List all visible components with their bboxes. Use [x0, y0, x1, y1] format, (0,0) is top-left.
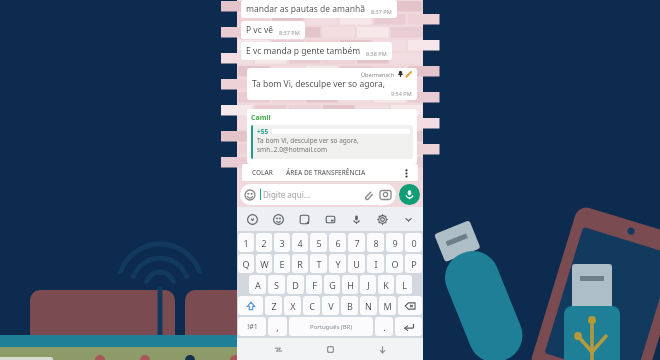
button[interactable]: O	[386, 254, 403, 273]
button[interactable]: B	[341, 296, 358, 315]
staticText: U	[353, 258, 360, 270]
button[interactable]: 7	[348, 233, 365, 252]
staticText: 6	[335, 237, 341, 249]
button[interactable]: Camil	[247, 109, 417, 164]
button[interactable]: Back	[371, 338, 393, 360]
button[interactable]: 4	[292, 233, 308, 252]
staticText: E vc manda p gente também	[246, 45, 361, 57]
button[interactable]: D	[287, 275, 304, 294]
button[interactable]: !#1	[238, 317, 266, 336]
button[interactable]: Enter	[395, 317, 422, 336]
button[interactable]: S	[268, 275, 285, 294]
button[interactable]: Stickers	[293, 208, 315, 230]
button[interactable]: .	[375, 317, 393, 336]
staticText: O	[391, 258, 399, 270]
button[interactable]: R	[292, 254, 308, 273]
button[interactable]: 5	[310, 233, 327, 252]
staticText: T	[316, 258, 322, 270]
button[interactable]: U	[348, 254, 365, 273]
button[interactable]: J	[360, 275, 376, 294]
staticText: W	[260, 258, 269, 270]
button[interactable]: K	[378, 275, 394, 294]
staticText: P	[411, 258, 417, 270]
button[interactable]: Y	[329, 254, 346, 273]
staticText: X	[290, 300, 296, 312]
staticText: Ta bom Vi, desculpe ver so agora,	[257, 136, 359, 145]
button[interactable]: 8	[367, 233, 384, 252]
button[interactable]: Voice typing	[241, 208, 263, 230]
button[interactable]: GIF	[319, 208, 341, 230]
staticText: 8	[373, 237, 379, 249]
button[interactable]: 0	[405, 233, 422, 252]
button[interactable]: Backspace	[398, 296, 422, 315]
staticText: F	[312, 279, 317, 291]
staticText: G	[329, 279, 336, 291]
button[interactable]: Emoji	[240, 184, 396, 205]
button[interactable]: Shift	[238, 296, 263, 315]
button[interactable]: Voice message	[399, 184, 420, 205]
button[interactable]: L	[396, 275, 412, 294]
staticText: M	[383, 300, 392, 312]
button[interactable]: X	[284, 296, 301, 315]
staticText: P vc vê	[246, 24, 274, 36]
button[interactable]: ,	[268, 317, 287, 336]
staticText: ,	[276, 321, 279, 333]
button[interactable]: 1	[238, 233, 254, 252]
staticText: 8:38 PM	[366, 50, 387, 57]
button[interactable]: Q	[238, 254, 254, 273]
button[interactable]: N	[360, 296, 377, 315]
staticText: J	[367, 279, 370, 291]
button[interactable]: Übermensch	[247, 68, 417, 100]
button[interactable]: COLAR	[250, 165, 275, 180]
staticText: 1	[243, 237, 249, 249]
staticText: smh..2.0@hotmail.com	[257, 145, 327, 154]
staticText: N	[365, 300, 372, 312]
staticText: COLAR	[252, 168, 273, 177]
button[interactable]: Emoji	[267, 208, 289, 230]
staticText: A	[255, 279, 261, 291]
button[interactable]: I	[367, 254, 384, 273]
button[interactable]: 3	[274, 233, 290, 252]
staticText: Ta bom Vi, desculpe ver so agora,	[252, 78, 385, 90]
button[interactable]: W	[256, 254, 272, 273]
button[interactable]: G	[324, 275, 340, 294]
staticText: L	[402, 279, 407, 291]
staticText: 4	[297, 237, 303, 249]
button[interactable]: A	[249, 275, 266, 294]
button[interactable]: 9	[386, 233, 403, 252]
button[interactable]: Português (BR)	[289, 317, 373, 336]
button[interactable]: Recents	[267, 338, 289, 360]
button[interactable]: P vc vê	[241, 21, 305, 39]
staticText: Q	[242, 258, 250, 270]
staticText: +55	[257, 127, 269, 136]
button[interactable]: Z	[265, 296, 282, 315]
button[interactable]: Collapse keyboard	[397, 208, 419, 230]
button[interactable]: E	[274, 254, 290, 273]
button[interactable]: 6	[329, 233, 346, 252]
button[interactable]: M	[379, 296, 396, 315]
button[interactable]: T	[310, 254, 327, 273]
staticText: Português (BR)	[310, 323, 353, 331]
staticText: Camil	[251, 113, 271, 123]
staticText: 2	[261, 237, 267, 249]
button[interactable]: 2	[256, 233, 272, 252]
button[interactable]: More options	[398, 165, 414, 181]
button[interactable]: P	[405, 254, 422, 273]
button[interactable]: C	[303, 296, 320, 315]
other: Attach	[362, 189, 374, 201]
staticText: .	[383, 321, 386, 333]
button[interactable]: E vc manda p gente também	[241, 42, 392, 60]
button[interactable]: Home	[319, 338, 341, 360]
staticText: 7	[354, 237, 360, 249]
staticText: 8:37 PM	[371, 8, 392, 15]
other: Camera	[379, 188, 392, 201]
button[interactable]: ÁREA DE TRANSFERÊNCIA	[284, 165, 368, 180]
button[interactable]: H	[342, 275, 358, 294]
button[interactable]: V	[322, 296, 339, 315]
button[interactable]: Settings	[371, 208, 393, 230]
button[interactable]: F	[306, 275, 322, 294]
staticText: S	[274, 279, 279, 291]
button[interactable]: Microphone	[345, 208, 367, 230]
staticText: Y	[335, 258, 341, 270]
button[interactable]: mandar as pautas de amanhã	[241, 0, 397, 18]
